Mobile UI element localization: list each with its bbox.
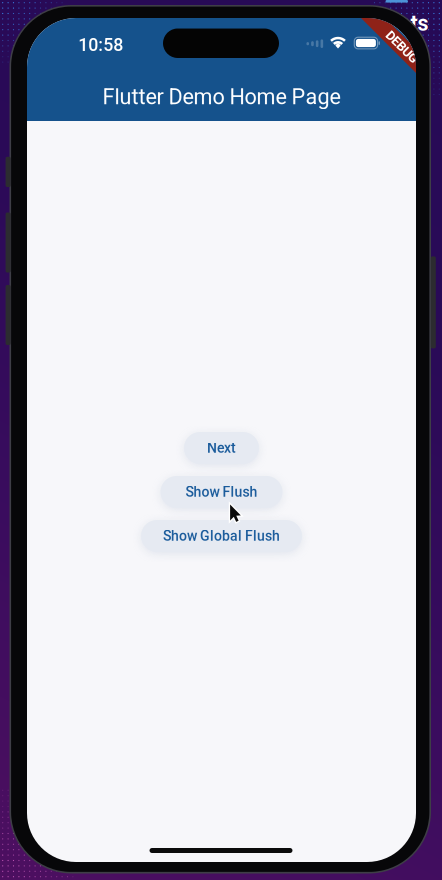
button[interactable]: Show Flush (160, 476, 282, 508)
staticText: ts (410, 11, 428, 36)
staticText: DEBUG (382, 40, 422, 54)
staticText: Show Global Flush (163, 528, 280, 544)
button[interactable]: Next (184, 432, 259, 464)
staticText: Next (207, 440, 236, 456)
button[interactable]: Show Global Flush (141, 520, 302, 552)
staticText: 10:58 (78, 34, 123, 55)
staticText: Flutter Demo Home Page (102, 84, 340, 109)
staticText: Show Flush (185, 484, 257, 500)
